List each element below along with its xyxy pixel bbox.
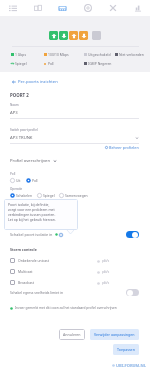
staticText: 1 Gbps	[15, 52, 27, 57]
button[interactable]: Verwijder aanpassingen	[90, 329, 139, 340]
button[interactable]: Onbekende unicast	[10, 258, 139, 263]
staticText: Toepassen	[117, 347, 135, 352]
staticText: Uitgeschakeld	[88, 52, 111, 57]
button[interactable]: Switch poort profiel	[10, 128, 139, 144]
button[interactable]: PoE	[44, 61, 84, 66]
button[interactable]: Uit	[10, 178, 21, 183]
staticText: Verwijder aanpassingen	[94, 332, 135, 337]
button[interactable]: Spiegel	[37, 193, 55, 198]
staticText: Samenvoegen	[65, 193, 88, 198]
staticText: zorgt voor een probleem met	[8, 207, 55, 212]
staticText: pkt/s	[102, 281, 110, 285]
button[interactable]: Naam	[10, 103, 139, 119]
button[interactable]: Poort 4	[79, 31, 88, 40]
staticText: Profiel overschrijven	[10, 158, 51, 164]
staticText: AP3 TRUNK	[10, 135, 33, 141]
button[interactable]: Broadcast	[10, 280, 139, 285]
button[interactable]: Multicast	[10, 269, 139, 274]
button[interactable]: Poort 1	[49, 31, 58, 40]
staticText: Poort isolatie, bij definitie,	[8, 202, 50, 207]
button[interactable]: Schakelen	[10, 193, 33, 198]
staticText: pkt/s	[102, 270, 110, 274]
staticText: Naam	[10, 103, 19, 107]
staticText: verbindingen tussen poorten.	[8, 212, 56, 217]
staticText: UBI-FORUM.NL	[116, 363, 146, 368]
button[interactable]: Menu	[0, 0, 25, 16]
staticText: Niet verbonden	[119, 52, 144, 57]
button[interactable]: Invoer gemerkt met dit icoon zal het sta…	[10, 306, 117, 310]
staticText: Uit	[16, 178, 21, 183]
staticText: Schakel egress snelheids limiet in	[10, 290, 64, 295]
staticText: Let op bij het gebruik hiervan.	[8, 217, 56, 222]
staticText: Spiegel	[15, 61, 27, 66]
staticText: 100/10 Mbps	[48, 52, 69, 57]
button[interactable]: 1 Gbps	[11, 52, 44, 57]
button[interactable]: Instellingen	[75, 0, 100, 16]
staticText: Broadcast	[18, 280, 34, 285]
staticText: Operatie	[10, 187, 23, 191]
staticText: Invoer gemerkt met dit icoon zal het sta…	[15, 306, 117, 310]
button[interactable]: Inzichten	[25, 0, 50, 16]
button[interactable]: Schakel egress snelheids limiet in	[10, 289, 139, 296]
button[interactable]: Samenvoegen	[59, 193, 88, 198]
staticText: PoE	[48, 61, 54, 66]
staticText: Beheer profielen	[109, 145, 139, 150]
button[interactable]: Poort 2	[59, 31, 68, 40]
button[interactable]: PoE	[26, 178, 38, 183]
staticText: PoE	[10, 172, 16, 176]
staticText: Storm controle	[10, 247, 37, 252]
button[interactable]: Profiel overschrijven	[10, 158, 57, 164]
button[interactable]: Poort 5	[92, 31, 101, 40]
staticText: Multicast	[18, 269, 33, 274]
staticText: Spiegel	[43, 193, 55, 198]
staticText: AP3	[10, 110, 18, 116]
button[interactable]: Per-poorts inzichten	[10, 79, 58, 85]
button[interactable]: Annuleren	[59, 329, 85, 340]
staticText: Annuleren	[63, 332, 81, 337]
button[interactable]: Niet verbonden	[115, 52, 150, 57]
button[interactable]: Gereedschap	[100, 0, 125, 16]
button[interactable]: Rapporten	[125, 0, 150, 16]
staticText: Onbekende unicast	[18, 258, 49, 263]
staticText: Schakel poort isolatie in	[10, 232, 53, 237]
staticText: pkt/s	[102, 259, 110, 263]
button[interactable]: Beheer profielen	[105, 145, 139, 150]
staticText: POORT 2	[10, 92, 29, 98]
button[interactable]: Uitgeschakeld	[84, 52, 115, 57]
button[interactable]: Spiegel	[11, 61, 44, 66]
staticText: Schakelen	[16, 193, 33, 198]
staticText: Per-poorts inzichten	[18, 79, 58, 85]
staticText: IGMP Negeren	[88, 61, 112, 66]
button[interactable]: Poort 3	[69, 31, 78, 40]
button[interactable]: Toepassen	[113, 344, 139, 355]
button[interactable]: Switch	[50, 0, 75, 16]
button[interactable]: IGMP Negeren	[84, 61, 115, 66]
staticText: PoE	[32, 178, 38, 183]
button[interactable]: 100/10 Mbps	[44, 52, 84, 57]
button[interactable]: Schakel poort isolatie in	[10, 231, 139, 238]
staticText: Switch poort profiel	[10, 128, 38, 132]
